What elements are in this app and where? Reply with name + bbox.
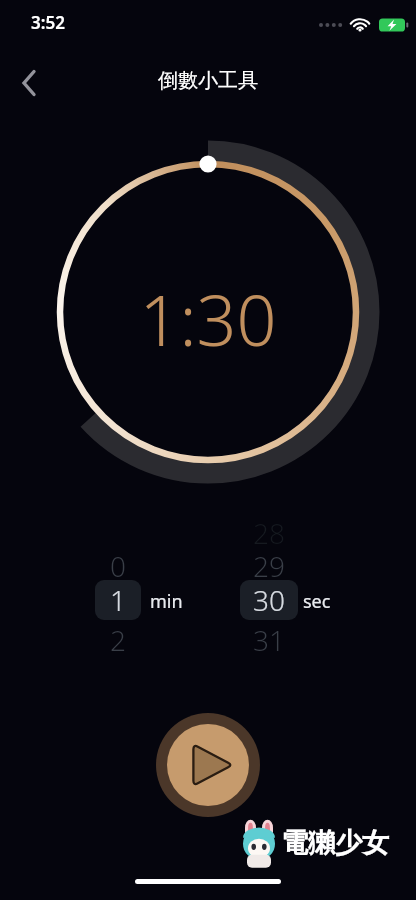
staticText: 3:52 (31, 11, 65, 34)
button[interactable]: 0 (95, 547, 141, 585)
staticText: 30 (253, 581, 285, 619)
button[interactable]: 30 (240, 580, 298, 620)
button[interactable]: Countdown dial, 1 minute 30 seconds (0, 0, 416, 900)
staticText: 電獺少女 (281, 826, 389, 860)
button[interactable]: 2 (95, 621, 141, 659)
button[interactable]: 29 (240, 547, 298, 585)
staticText: sec (303, 589, 331, 614)
button[interactable]: Back (5, 60, 51, 106)
staticText: 1 (110, 581, 126, 619)
button[interactable]: Start timer (155, 712, 261, 818)
button[interactable]: 1 (95, 580, 141, 620)
button[interactable]: 31 (240, 621, 298, 659)
staticText: 倒數小工具 (0, 68, 416, 93)
staticText: 1:30 (0, 271, 416, 366)
staticText: min (150, 589, 183, 614)
staticText: 28 (240, 514, 298, 552)
